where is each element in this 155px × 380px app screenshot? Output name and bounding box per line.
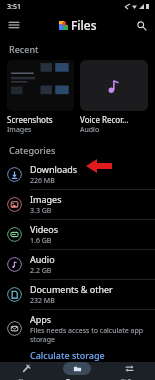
button[interactable]: Voice Recor... [80,60,148,135]
button[interactable]: Audio [0,250,155,279]
staticText: Clean [18,377,34,380]
staticText: Videos [30,223,59,235]
button[interactable]: Images [0,190,155,219]
staticText: Voice Recor... [80,114,148,125]
staticText: 232 MB [30,296,55,306]
staticText: Images [7,125,74,135]
button[interactable]: Screenshots [7,60,74,135]
button[interactable]: Share [103,362,155,380]
staticText: Images [30,193,62,205]
staticText: Documents & other [30,283,113,295]
button[interactable]: Apps [0,310,155,344]
staticText: 3.3 GB [30,206,52,216]
button[interactable]: Videos [0,220,155,249]
staticText: Files needs access to calculate app stor… [30,326,148,344]
staticText: Screenshots [7,114,74,125]
staticText: 1.6 GB [30,236,52,246]
staticText: Apps [30,313,52,325]
staticText: 2.2 GB [30,266,52,276]
button[interactable]: Open navigation menu [4,15,24,35]
staticText: Share [121,377,138,380]
staticText: Browse [66,377,88,380]
button[interactable]: Clean [0,362,51,380]
button[interactable]: Calculate storage [30,348,105,362]
button[interactable]: Browse [51,362,103,380]
staticText: Recent [9,43,39,55]
button[interactable]: Search [131,15,151,35]
staticText: Categories [9,144,56,156]
staticText: Audio [30,253,55,265]
staticText: Audio [80,125,148,135]
staticText: Files [71,17,97,33]
staticText: Downloads [30,163,78,175]
staticText: 3:51 [7,2,21,12]
staticText: Calculate storage [30,349,105,361]
staticText: 226 MB [30,176,55,186]
button[interactable]: Documents & other [0,280,155,309]
button[interactable]: Downloads [0,160,155,189]
